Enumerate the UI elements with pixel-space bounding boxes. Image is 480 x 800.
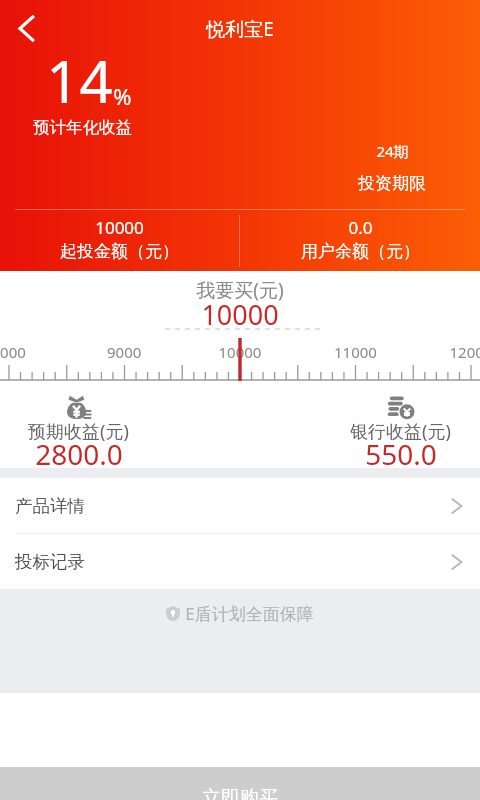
staticText: 投资期限 xyxy=(358,173,426,194)
staticText: % xyxy=(113,81,132,111)
staticText: 2800.0 xyxy=(35,435,123,473)
staticText: 起投金额（元） xyxy=(60,241,179,262)
staticText: 10000 xyxy=(95,216,144,239)
staticText: 我要买(元) xyxy=(196,277,284,303)
staticText: 10000 xyxy=(201,296,279,333)
staticText: 投标记录 xyxy=(15,551,85,573)
staticText: 产品详情 xyxy=(15,495,85,517)
staticText: 用户余额（元） xyxy=(301,241,420,262)
staticText: 立即购买 xyxy=(202,786,278,800)
button[interactable]: Back xyxy=(6,8,46,48)
button[interactable]: 投标记录 xyxy=(0,534,480,589)
staticText: 预期收益(元) xyxy=(28,419,129,444)
staticText: 14 xyxy=(46,41,113,120)
staticText: 0.0 xyxy=(348,216,373,239)
staticText: 24期 xyxy=(376,141,409,161)
staticText: 悦利宝E xyxy=(206,16,274,42)
staticText: 550.0 xyxy=(365,435,437,473)
staticText: 银行收益(元) xyxy=(350,419,451,444)
button[interactable]: 产品详情 xyxy=(0,478,480,533)
staticText: 预计年化收益 xyxy=(33,117,132,138)
button[interactable]: 立即购买 xyxy=(0,767,480,800)
staticText: E盾计划全面保障 xyxy=(185,602,314,625)
